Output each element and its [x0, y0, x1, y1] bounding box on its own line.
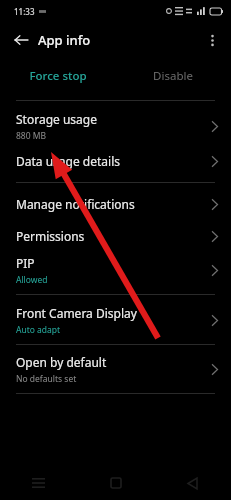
- button[interactable]: Back: [154, 466, 231, 500]
- button[interactable]: Storage usage: [0, 107, 231, 145]
- staticText: Data usage details: [16, 153, 120, 169]
- staticText: Open by default: [16, 354, 107, 370]
- staticText: App info: [38, 31, 91, 49]
- staticText: PIP: [16, 255, 35, 271]
- button[interactable]: Back: [9, 28, 33, 52]
- staticText: Force stop: [29, 68, 87, 84]
- staticText: 880 MB: [16, 130, 47, 142]
- staticText: Front Camera Display: [16, 305, 137, 321]
- button[interactable]: Recent apps: [0, 466, 77, 500]
- button[interactable]: Open by default: [0, 350, 231, 388]
- button[interactable]: Disable: [115, 58, 231, 94]
- button[interactable]: Permissions: [0, 220, 231, 252]
- staticText: 11:33: [14, 6, 35, 17]
- staticText: Allowed: [16, 274, 48, 286]
- button[interactable]: Force stop: [0, 58, 115, 94]
- button[interactable]: More options: [200, 28, 224, 52]
- button[interactable]: Data usage details: [0, 145, 231, 177]
- staticText: Storage usage: [16, 111, 97, 127]
- button[interactable]: PIP: [0, 252, 231, 288]
- button[interactable]: Front Camera Display: [0, 301, 231, 339]
- staticText: No defaults set: [16, 373, 77, 385]
- staticText: Disable: [153, 68, 193, 84]
- staticText: Permissions: [16, 228, 85, 244]
- button[interactable]: Home: [77, 466, 154, 500]
- staticText: Manage notifications: [16, 196, 135, 212]
- staticText: Auto adapt: [16, 324, 61, 336]
- button[interactable]: Manage notifications: [0, 188, 231, 220]
